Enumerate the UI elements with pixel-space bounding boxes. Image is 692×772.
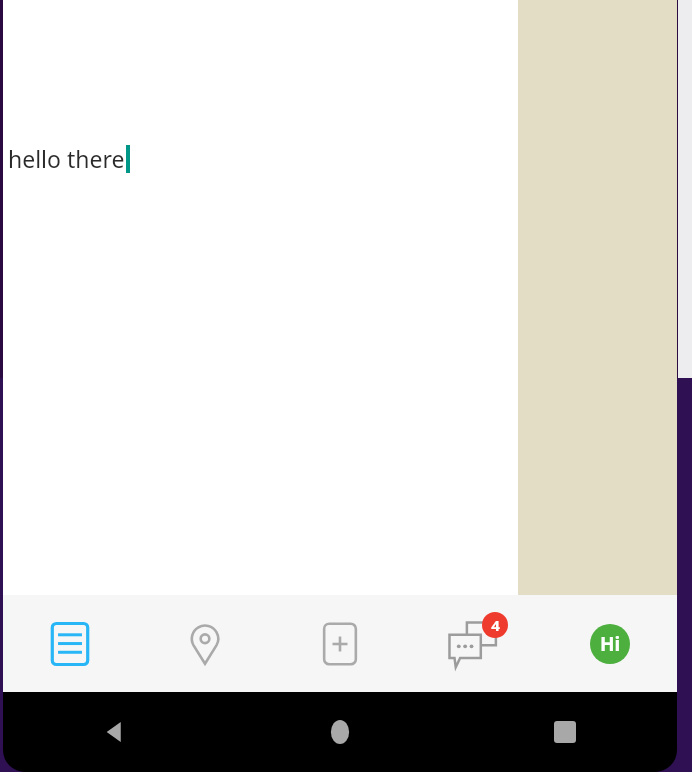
- staticText: Hi: [600, 631, 621, 657]
- button[interactable]: Add: [272, 595, 407, 692]
- button[interactable]: Notes list: [3, 595, 137, 692]
- staticText: hello there: [8, 143, 125, 174]
- button[interactable]: Messages, 4 unread: [407, 595, 542, 692]
- button[interactable]: Back: [3, 692, 227, 772]
- button[interactable]: Recent apps: [452, 692, 677, 772]
- staticText: 4: [491, 615, 500, 635]
- button[interactable]: Profile: [542, 595, 677, 692]
- button[interactable]: Home: [227, 692, 452, 772]
- button[interactable]: hello there: [3, 0, 518, 595]
- button[interactable]: Location: [137, 595, 272, 692]
